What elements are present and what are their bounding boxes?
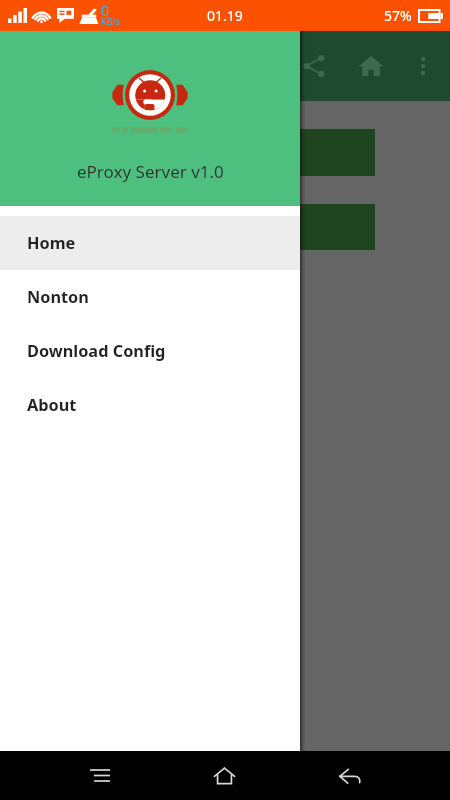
staticText: eProxy Server v1.0 — [77, 160, 224, 183]
button[interactable]: More options — [399, 42, 447, 90]
button[interactable]: Back — [326, 751, 374, 800]
button[interactable]: Nonton — [0, 270, 300, 324]
staticText: 01.19 — [207, 6, 243, 25]
button[interactable]: Share — [290, 42, 338, 90]
staticText: Download Config — [27, 340, 166, 362]
staticText: 57% — [384, 6, 412, 25]
staticText: Nonton — [27, 286, 89, 308]
staticText: About — [27, 394, 77, 416]
staticText: 0 — [101, 1, 110, 20]
button[interactable]: About — [0, 378, 300, 432]
button[interactable]: Home — [0, 216, 300, 270]
staticText: Home — [27, 232, 76, 254]
button[interactable]: Recents — [76, 751, 124, 800]
button[interactable]: Home — [347, 42, 395, 90]
button[interactable]: Home — [200, 751, 248, 800]
button[interactable]: Download Config — [0, 324, 300, 378]
staticText: KB/s — [101, 15, 121, 27]
